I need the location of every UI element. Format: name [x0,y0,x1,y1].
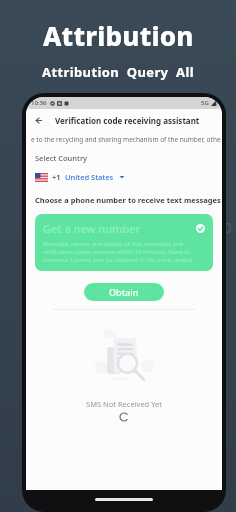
staticText: e to the recycling and sharing mechanism… [31,135,221,144]
staticText: FastPhone [141,221,236,247]
staticText: Get a new number [43,221,141,236]
button[interactable]: Back [31,112,47,128]
staticText: Select Country [35,153,88,163]
staticText: 10:36 [31,99,47,107]
staticText: Choose a phone number to receive text me… [35,195,221,205]
staticText: United States [65,172,114,182]
button[interactable]: Obtain [84,283,164,301]
button[interactable]: Get a new number [35,214,213,271]
staticText: Attribution Query All [42,63,194,81]
staticText: Reusable, receive and display all text m… [43,240,205,264]
staticText: +1 [52,172,61,182]
staticText: Attribution [43,18,194,53]
staticText: SMS Not Received Yet [86,399,162,409]
staticText: 5G [201,99,209,107]
staticText: Verification code receiving assistant [55,115,200,126]
button[interactable]: +1 [35,172,125,182]
staticText: Obtain [109,286,139,298]
